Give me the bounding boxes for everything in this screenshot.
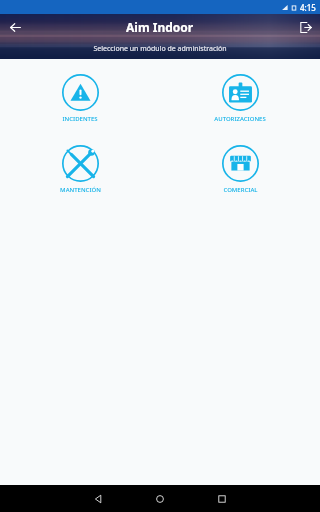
staticText: INCIDENTES	[62, 115, 98, 123]
button[interactable]: INCIDENTES	[0, 72, 160, 125]
button[interactable]: Back	[0, 14, 30, 40]
button[interactable]: MANTENCIÓN	[0, 143, 160, 196]
staticText: 4:15	[300, 2, 316, 13]
button[interactable]: COMERCIAL	[160, 143, 320, 196]
button[interactable]: Logout	[290, 14, 320, 40]
button[interactable]: Home	[129, 485, 191, 512]
staticText: COMERCIAL	[223, 186, 258, 194]
button[interactable]: Back	[67, 485, 129, 512]
staticText: MANTENCIÓN	[60, 186, 101, 194]
button[interactable]: Recent apps	[191, 485, 253, 512]
staticText: AUTORIZACIONES	[214, 115, 266, 123]
staticText: Aim Indoor	[126, 19, 194, 35]
staticText: Seleccione un módulo de administración	[93, 44, 227, 54]
button[interactable]: AUTORIZACIONES	[160, 72, 320, 125]
